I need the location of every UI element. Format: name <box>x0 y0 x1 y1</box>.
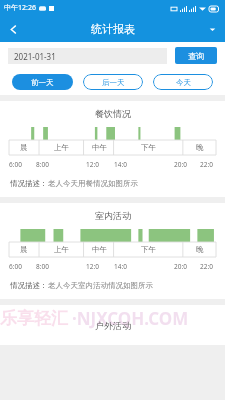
staticText: 晚 <box>196 143 204 152</box>
staticText: 22:00 <box>200 160 216 170</box>
button[interactable]: 更多 <box>199 16 225 42</box>
staticText: 老人今天用餐情况如图所示 <box>48 179 138 188</box>
staticText: 情况描述： <box>10 179 48 188</box>
staticText: 8:00 <box>36 160 49 169</box>
staticText: 2021-01-31 <box>14 51 56 62</box>
staticText: 中午 <box>92 245 107 254</box>
button[interactable]: 后一天 <box>83 74 143 90</box>
staticText: 晨 <box>20 245 28 254</box>
staticText: 户外活动 <box>95 320 131 331</box>
staticText: 20:00 <box>174 160 190 170</box>
staticText: 后一天 <box>102 78 125 87</box>
staticText: 老人今天室内活动情况如图所示 <box>48 281 153 290</box>
staticText: 6:00 <box>9 160 22 169</box>
button[interactable]: 2021-01-31 <box>8 48 167 64</box>
staticText: 前一天 <box>31 78 54 87</box>
staticText: 下午 <box>141 245 156 254</box>
staticText: 情况描述： <box>10 281 48 290</box>
staticText: 室内活动 <box>95 210 131 221</box>
staticText: 查询 <box>188 51 204 61</box>
staticText: 下午 <box>141 143 156 152</box>
staticText: 统计报表 <box>91 22 135 36</box>
staticText: 8:00 <box>36 262 49 271</box>
staticText: 12:00 <box>86 262 102 272</box>
staticText: 晨 <box>20 143 28 152</box>
staticText: 今天 <box>176 78 191 87</box>
staticText: 中午12:26 <box>4 3 36 13</box>
button[interactable]: 今天 <box>153 74 213 90</box>
staticText: 12:00 <box>86 160 102 170</box>
staticText: 14:00 <box>114 160 130 170</box>
staticText: 20:00 <box>174 262 190 272</box>
staticText: ·NJXCQH.COM <box>72 307 189 330</box>
staticText: 上午 <box>54 143 69 152</box>
button[interactable]: 返回 <box>0 16 26 42</box>
button[interactable]: 查询 <box>175 47 217 64</box>
staticText: 22:00 <box>200 262 216 272</box>
staticText: 晚 <box>196 245 204 254</box>
staticText: 6:00 <box>9 262 22 271</box>
staticText: 餐饮情况 <box>95 108 131 119</box>
staticText: 上午 <box>54 245 69 254</box>
staticText: 中午 <box>92 143 107 152</box>
staticText: 14:00 <box>114 262 130 272</box>
button[interactable]: 前一天 <box>12 74 73 90</box>
staticText: 乐享轻汇 <box>0 308 68 329</box>
